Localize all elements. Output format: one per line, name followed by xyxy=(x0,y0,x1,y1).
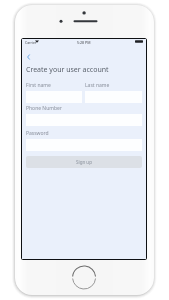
staticText: Password xyxy=(26,130,49,137)
staticText: 5:28 PM xyxy=(77,40,91,45)
button[interactable]: Sign up xyxy=(26,156,142,168)
staticText: Last name xyxy=(85,82,110,89)
staticText: Create your user account xyxy=(26,65,109,75)
staticText: Carrier xyxy=(25,40,37,45)
staticText: First name xyxy=(26,82,51,89)
staticText: Sign up xyxy=(76,159,92,165)
staticText: Phone Number xyxy=(26,105,62,112)
button[interactable]: Back xyxy=(22,50,35,63)
